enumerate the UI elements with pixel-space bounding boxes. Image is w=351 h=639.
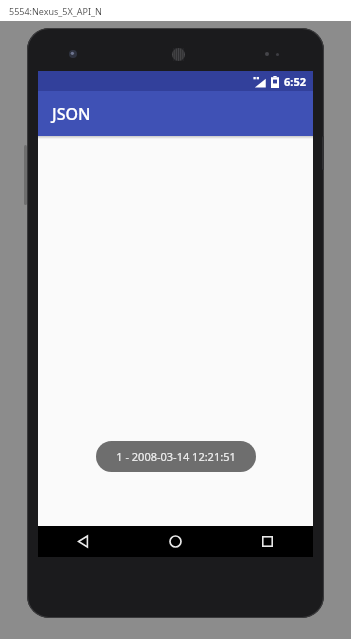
- button[interactable]: Back: [38, 526, 129, 557]
- staticText: 5554:Nexus_5X_API_N: [9, 5, 102, 17]
- staticText: 1 - 2008-03-14 12:21:51: [116, 449, 236, 464]
- button[interactable]: Recent apps: [221, 526, 313, 557]
- button[interactable]: Home: [129, 526, 221, 557]
- staticText: JSON: [52, 103, 91, 125]
- button[interactable]: 1 - 2008-03-14 12:21:51: [96, 441, 256, 472]
- staticText: 6:52: [284, 74, 306, 89]
